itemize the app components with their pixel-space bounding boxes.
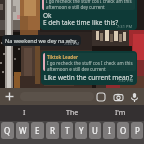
button[interactable]: Voice message: [128, 91, 140, 103]
button[interactable]: E: [31, 122, 44, 139]
staticText: Q: [4, 125, 11, 136]
staticText: 7:31 PM: [117, 24, 133, 29]
staticText: T: [65, 125, 70, 136]
button[interactable]: I: [0, 105, 48, 121]
staticText: I'm: [115, 108, 126, 118]
button[interactable]: W: [16, 122, 29, 139]
button[interactable]: O: [117, 122, 129, 139]
staticText: Na weekend we dey na why: [5, 37, 77, 44]
staticText: I: [108, 125, 111, 136]
staticText: I go recheck the stuff cos I check am th…: [46, 0, 132, 4]
button[interactable]: R: [46, 122, 59, 139]
button[interactable]: P: [131, 122, 143, 139]
staticText: afternoon e still dey current: [46, 4, 105, 10]
button[interactable]: Camera: [112, 91, 124, 103]
staticText: P: [135, 125, 140, 136]
staticText: 7:35 PM: [64, 41, 80, 46]
staticText: Like wetin the current mean?: [44, 73, 133, 82]
button[interactable]: Attach: [3, 90, 16, 103]
staticText: E: [35, 125, 40, 136]
button[interactable]: Tiktok Leader: [41, 51, 137, 85]
button[interactable]: Na weekend we dey na why: [2, 35, 81, 46]
staticText: Ok: [43, 11, 52, 20]
button[interactable]: U: [89, 122, 101, 139]
button[interactable]: I'm: [96, 105, 144, 121]
button[interactable]: I: [103, 122, 115, 139]
button[interactable]: Q: [1, 122, 14, 139]
staticText: O: [120, 125, 127, 136]
staticText: I go recheck the stuff cos I check am th…: [47, 60, 133, 66]
button[interactable]: Sticker: [95, 91, 107, 103]
button[interactable]: Y: [75, 122, 87, 139]
staticText: Y: [79, 125, 84, 136]
button[interactable]: The: [48, 105, 96, 121]
staticText: E deh take time like this?: [43, 18, 119, 27]
staticText: 7:37 PM: [118, 78, 134, 83]
staticText: U: [92, 125, 98, 136]
staticText: afternoon e still dey current: [47, 66, 106, 71]
staticText: W: [19, 125, 27, 136]
button[interactable]: T: [61, 122, 73, 139]
staticText: I: [23, 108, 26, 118]
button[interactable]: Tiktok Leader: [40, 0, 137, 30]
staticText: The: [66, 108, 79, 118]
staticText: Tiktok Leader: [47, 54, 78, 60]
staticText: R: [50, 125, 55, 136]
